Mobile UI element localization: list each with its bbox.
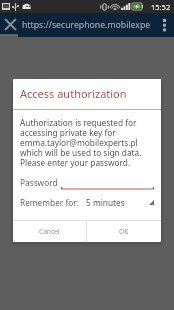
staticText: Authorization is requested for accessing…: [20, 117, 142, 168]
button[interactable]: OK: [87, 221, 161, 242]
button[interactable]: Remember for:: [13, 195, 161, 209]
button[interactable]: [61, 181, 154, 190]
staticText: Remember for:: [20, 197, 79, 208]
staticText: OK: [119, 227, 129, 236]
button[interactable]: More options: [157, 13, 172, 35]
staticText: https://securephone.mobilexpe: [22, 19, 151, 31]
staticText: 5 minutes: [86, 197, 125, 208]
staticText: Cancel: [39, 227, 60, 236]
staticText: Password: [20, 177, 58, 188]
button[interactable]: Close: [0, 14, 21, 34]
button[interactable]: Cancel: [13, 221, 86, 242]
staticText: 15:52: [151, 2, 171, 12]
staticText: Access authorization: [20, 86, 127, 101]
